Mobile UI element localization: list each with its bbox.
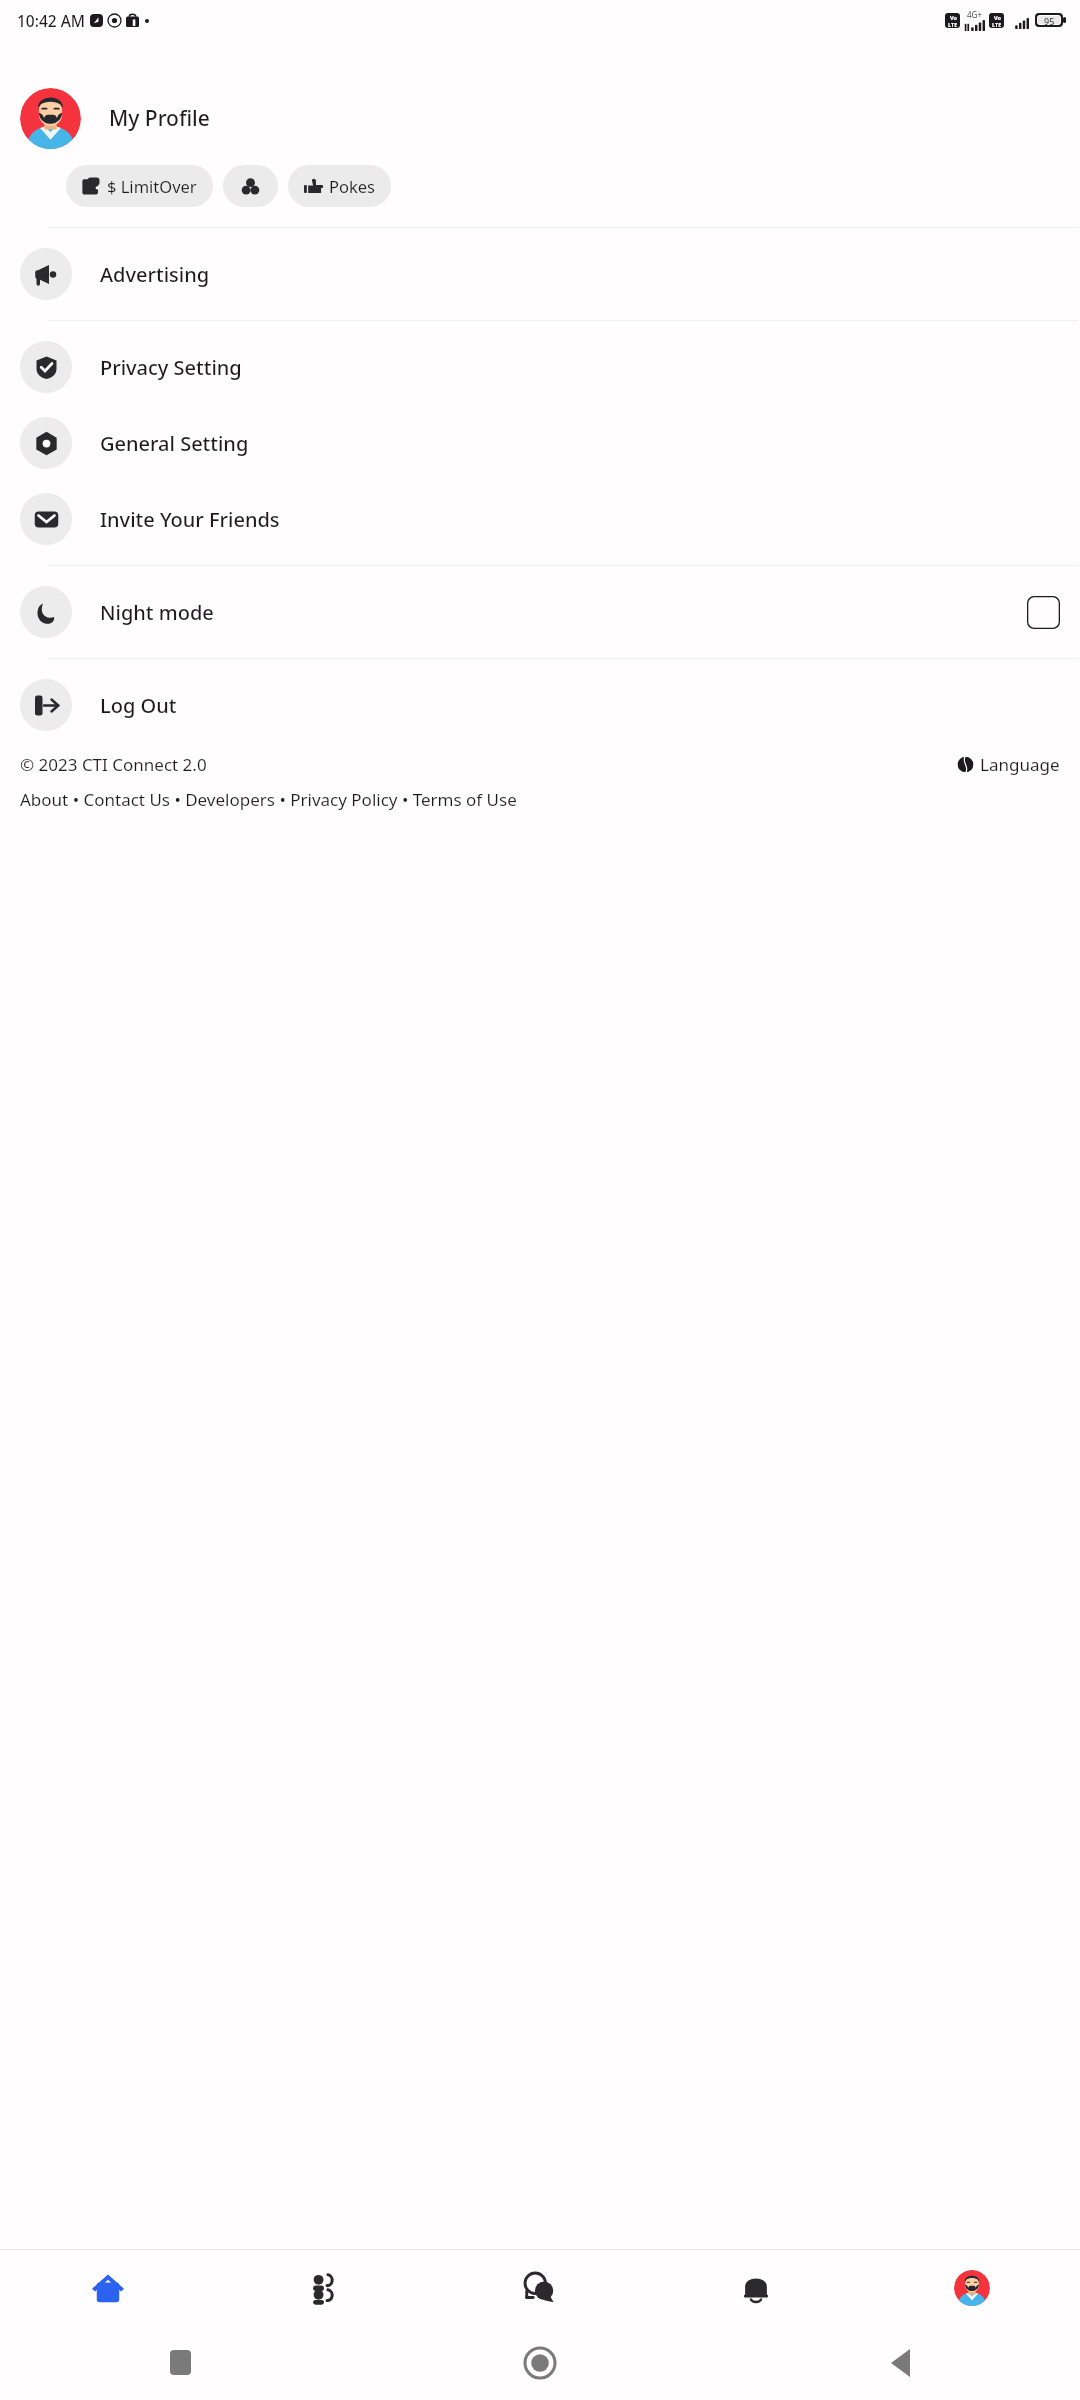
staticText: 10:42 AM (17, 10, 86, 31)
button[interactable]: Privacy Setting (0, 329, 1080, 405)
button[interactable]: Back (720, 2325, 1080, 2400)
button[interactable]: Pokes (288, 165, 391, 207)
staticText: Privacy Setting (100, 354, 242, 381)
button[interactable]: Advertising (0, 236, 1080, 312)
button[interactable]: My Profile (0, 88, 1080, 149)
staticText: Advertising (100, 261, 210, 288)
staticText: 4G+ (967, 9, 982, 20)
staticText: LTE (948, 21, 958, 28)
button[interactable]: Invite Your Friends (0, 481, 1080, 557)
staticText: Log Out (100, 692, 177, 719)
button[interactable]: Messages (432, 2250, 648, 2325)
button[interactable]: Home (0, 2250, 216, 2325)
staticText: Invite Your Friends (100, 506, 280, 533)
staticText: 95 (1044, 15, 1055, 25)
button[interactable]: About • Contact Us • Developers • Privac… (20, 788, 517, 811)
button[interactable]: Friends (223, 165, 278, 207)
staticText: LTE (992, 21, 1002, 28)
staticText: © 2023 CTI Connect 2.0 (20, 753, 207, 776)
button[interactable]: Log Out (0, 667, 1080, 743)
staticText: Pokes (329, 175, 375, 197)
button[interactable]: Night mode (0, 574, 1080, 650)
button[interactable]: Language (957, 753, 1060, 776)
staticText: General Setting (100, 430, 249, 457)
button[interactable]: Notifications (648, 2250, 864, 2325)
button[interactable]: General Setting (0, 405, 1080, 481)
staticText: Vo (950, 14, 957, 21)
button[interactable]: Night mode toggle (1027, 596, 1060, 629)
staticText: My Profile (109, 104, 210, 133)
button[interactable]: $ LimitOver (66, 165, 213, 207)
staticText: Vo (994, 14, 1001, 21)
staticText: Night mode (100, 599, 214, 626)
button[interactable]: Friends (216, 2250, 432, 2325)
staticText: $ LimitOver (107, 175, 197, 197)
button[interactable]: Profile (864, 2250, 1080, 2325)
button[interactable]: Home (360, 2325, 720, 2400)
button[interactable]: Recents (0, 2325, 360, 2400)
staticText: Language (980, 753, 1060, 776)
